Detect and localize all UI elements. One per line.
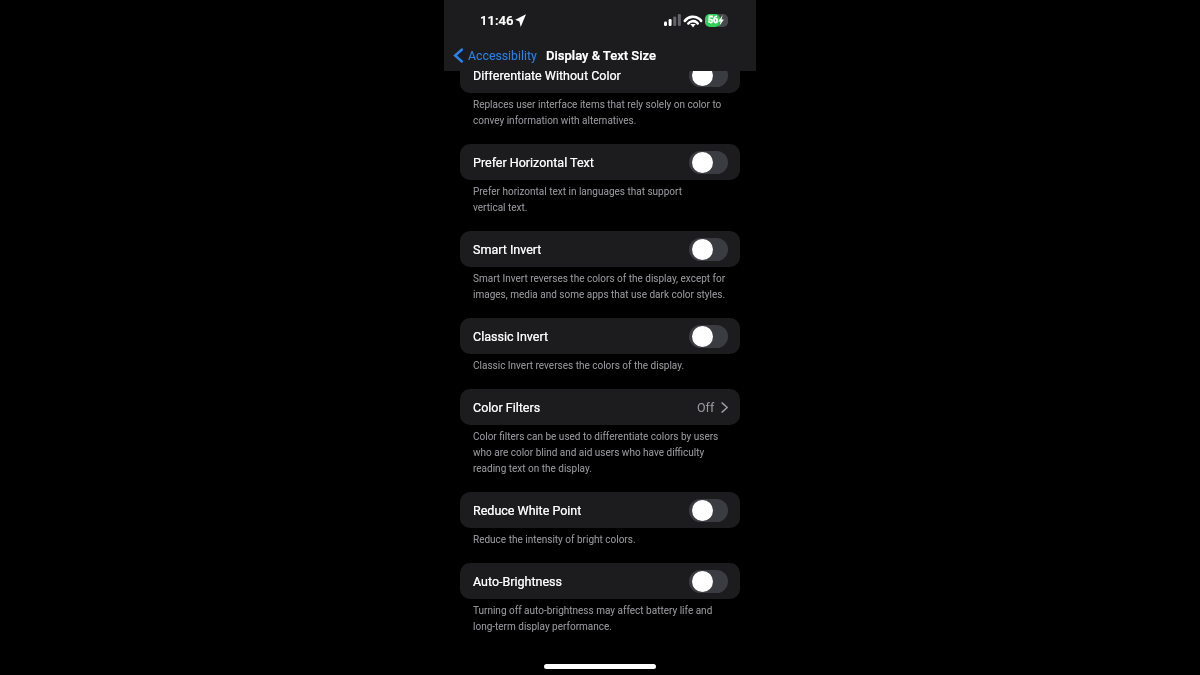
staticText: Off [697,400,715,415]
staticText: Display & Text Size [546,48,656,63]
button[interactable]: Color Filters [460,389,740,425]
button[interactable]: Smart Invert [460,231,740,267]
staticText: Accessibility [468,49,537,63]
staticText: Color Filters [473,400,541,415]
staticText: Reduce White Point [473,503,582,518]
staticText: Classic Invert reverses the colors of th… [473,357,685,373]
button[interactable]: Classic Invert, off [689,325,728,348]
staticText: 56 [708,15,719,26]
staticText: 11:46 [480,13,514,28]
staticText: Prefer horizontal text in languages that… [473,183,682,215]
button[interactable]: Accessibility [444,44,543,67]
staticText: Smart Invert reverses the colors of the … [473,270,726,302]
staticText: Auto-Brightness [473,574,563,589]
other: Cellular signal [664,14,681,26]
staticText: Turning off auto-brightness may affect b… [473,602,713,634]
other: Battery 56 percent charging [705,14,728,27]
button[interactable]: Classic Invert [460,318,740,354]
staticText: Color filters can be used to differentia… [473,428,719,476]
button[interactable]: Differentiate Without Color, off [689,64,728,87]
button[interactable]: Prefer Horizontal Text, off [689,151,728,174]
staticText: Classic Invert [473,329,549,344]
staticText: Reduce the intensity of bright colors. [473,531,636,547]
staticText: Replaces user interface items that rely … [473,96,722,128]
other: Location in use [515,14,526,27]
button[interactable]: Auto-Brightness [460,563,740,599]
button[interactable]: Auto-Brightness, off [689,570,728,593]
button[interactable]: Reduce White Point, off [689,499,728,522]
button[interactable]: Differentiate Without Color [460,57,740,93]
staticText: Smart Invert [473,242,542,257]
other: Wi-Fi [685,13,701,27]
staticText: Prefer Horizontal Text [473,155,594,170]
button[interactable]: Prefer Horizontal Text [460,144,740,180]
button[interactable]: Smart Invert, off [689,238,728,261]
button[interactable]: Reduce White Point [460,492,740,528]
staticText: Differentiate Without Color [473,68,621,83]
